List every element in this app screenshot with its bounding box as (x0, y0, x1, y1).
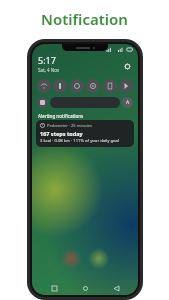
staticText: 167 steps today (40, 130, 83, 137)
button[interactable]: Brightness (50, 97, 120, 108)
staticText: Alerting notifications (38, 113, 84, 119)
button[interactable]: Quick setting 4 (103, 79, 117, 93)
button[interactable]: Quick setting 1 (53, 79, 67, 93)
button[interactable]: Screen cast (37, 97, 48, 108)
button[interactable]: Quick setting 5 (119, 79, 133, 93)
button[interactable]: Pedometer · 25 minutes (36, 120, 134, 147)
staticText: 3 kcal · 0.08 km · 111% of your daily go… (40, 138, 120, 144)
button[interactable]: Settings (122, 61, 132, 71)
button[interactable]: Quick setting 0 (37, 79, 51, 93)
staticText: Pedometer · 25 minutes (47, 123, 93, 128)
staticText: A (126, 99, 130, 106)
staticText: 5:17 (38, 54, 56, 66)
staticText: Notification (41, 9, 128, 29)
button[interactable]: Auto brightness (122, 97, 133, 108)
button[interactable]: Recents (48, 282, 60, 294)
button[interactable]: Quick setting 2 (70, 79, 84, 93)
button[interactable]: Home (79, 282, 91, 294)
button[interactable]: Quick setting 3 (86, 79, 100, 93)
button[interactable]: Back (110, 282, 122, 294)
staticText: Sat, 4 Nov (38, 67, 60, 73)
